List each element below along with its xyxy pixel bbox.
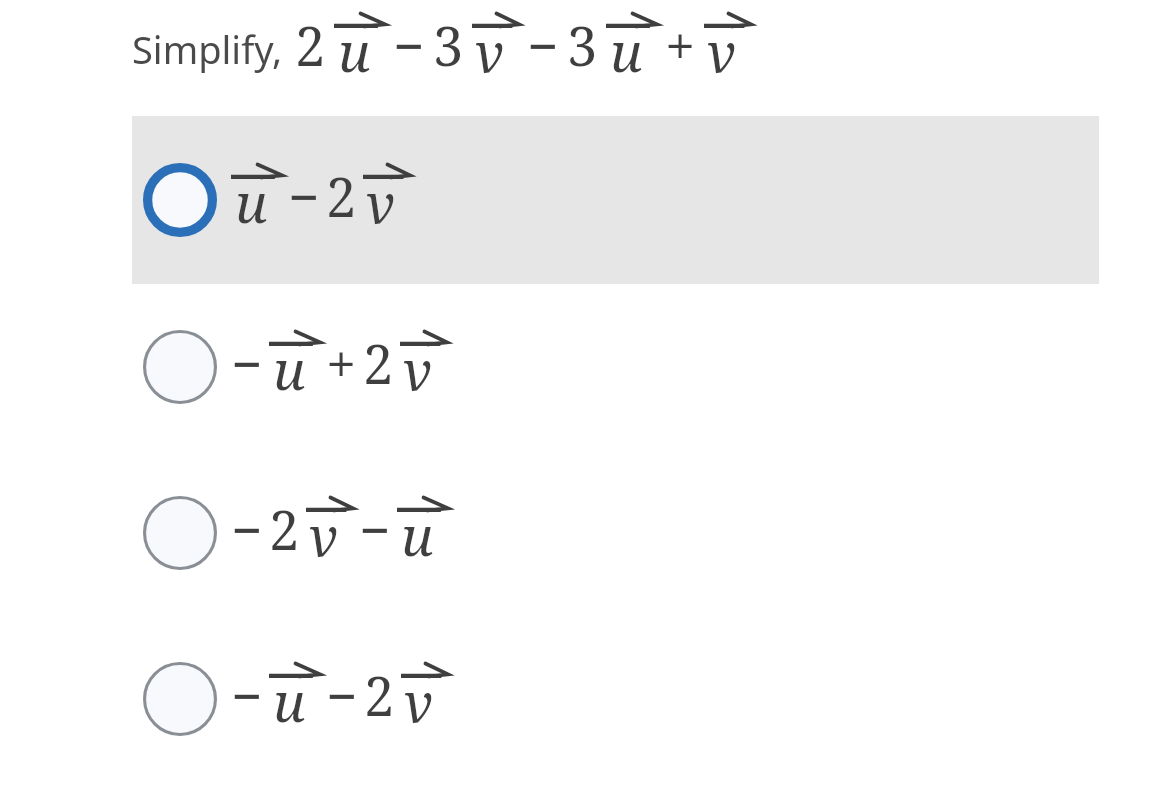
staticText: − (231, 492, 263, 566)
staticText: 3 (567, 8, 598, 82)
staticText: v (366, 165, 396, 239)
other: Select answer option (143, 662, 217, 736)
staticText: u (610, 14, 643, 88)
button[interactable]: Select answer option (132, 616, 1099, 782)
staticText: u (401, 498, 434, 572)
staticText: − (393, 8, 425, 82)
staticText: 3 (433, 8, 464, 82)
staticText: 2 (269, 492, 300, 566)
staticText: u (273, 332, 306, 406)
staticText: v (475, 14, 505, 88)
staticText: u (235, 165, 268, 239)
staticText: − (288, 159, 320, 233)
staticText: 2 (326, 159, 357, 233)
staticText: 2 (363, 326, 394, 400)
staticText: v (309, 498, 339, 572)
staticText: − (231, 326, 263, 400)
staticText: u (338, 14, 371, 88)
staticText: v (403, 332, 433, 406)
other: Select answer option (143, 496, 217, 570)
other: Select answer option (143, 163, 217, 237)
staticText: + (326, 326, 357, 400)
staticText: u (273, 664, 306, 738)
staticText: − (326, 658, 358, 732)
staticText: − (231, 658, 263, 732)
other: Select answer option (143, 330, 217, 404)
staticText: 2 (295, 8, 326, 82)
staticText: 2 (364, 658, 395, 732)
staticText: v (707, 14, 737, 88)
button[interactable]: Select answer option (132, 450, 1099, 616)
staticText: v (404, 664, 434, 738)
staticText: − (527, 8, 559, 82)
staticText: − (359, 492, 391, 566)
staticText: + (665, 8, 696, 82)
button[interactable]: Select answer option (132, 116, 1099, 284)
button[interactable]: Select answer option (132, 284, 1099, 450)
staticText: Simplify, (132, 23, 283, 75)
